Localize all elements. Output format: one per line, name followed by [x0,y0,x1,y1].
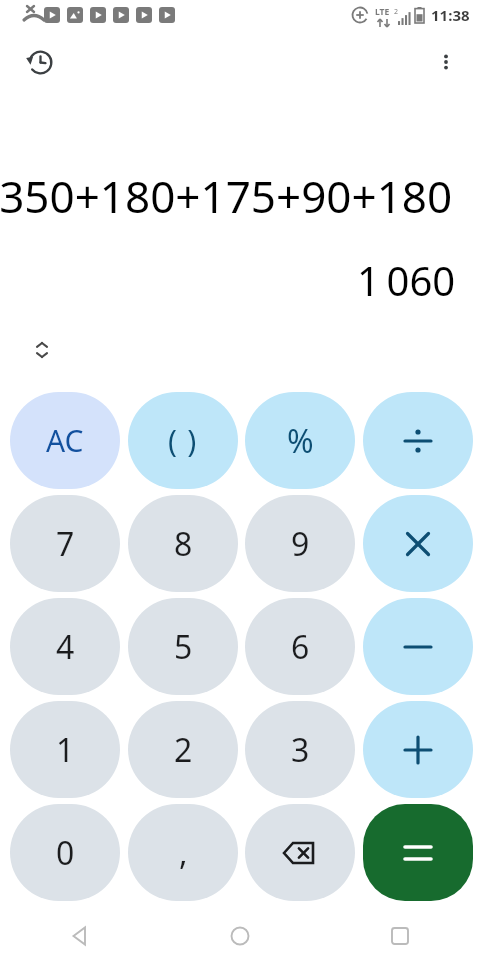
button[interactable]: Delete [245,804,355,901]
staticText: 8 [174,522,193,566]
staticText: 4 [56,625,75,669]
button[interactable]: 1 [10,701,120,798]
button[interactable]: 9 [245,495,355,592]
button[interactable]: Home [160,912,320,960]
staticText: , [179,831,188,875]
button[interactable]: 0 [10,804,120,901]
button[interactable]: 4 [10,598,120,695]
button[interactable]: 3 [245,701,355,798]
button[interactable]: 8 [128,495,238,592]
staticText: 3 [291,728,310,772]
button[interactable]: Recents [320,912,480,960]
staticText: AC [46,420,84,461]
button[interactable]: Divide [363,392,473,489]
button[interactable]: ( ) [128,392,238,489]
staticText: 2 [394,7,399,17]
button[interactable]: Expand history [22,330,62,370]
button[interactable]: Minus [363,598,473,695]
button[interactable]: 5 [128,598,238,695]
button[interactable]: % [245,392,355,489]
staticText: 6 [291,625,310,669]
staticText: 5 [174,625,193,669]
button[interactable]: AC [10,392,120,489]
staticText: 0 [56,831,75,875]
button[interactable]: 2 [128,701,238,798]
staticText: +350+180+175+90+180 [0,166,453,226]
staticText: 11:38 [431,5,470,25]
button[interactable]: 6 [245,598,355,695]
button[interactable]: Equals [363,804,473,901]
button[interactable]: Back [0,912,160,960]
staticText: 1 [56,728,75,772]
staticText: 2 [174,728,193,772]
staticText: % [287,419,314,463]
staticText: LTE [375,6,390,18]
button[interactable]: History [16,38,64,86]
button[interactable]: , [128,804,238,901]
staticText: 7 [56,522,75,566]
button[interactable]: Multiply [363,495,473,592]
staticText: 9 [291,522,310,566]
button[interactable]: More options [422,38,470,86]
staticText: 1 060 [357,253,456,307]
staticText: ( ) [168,420,198,461]
button[interactable]: 7 [10,495,120,592]
button[interactable]: Plus [363,701,473,798]
